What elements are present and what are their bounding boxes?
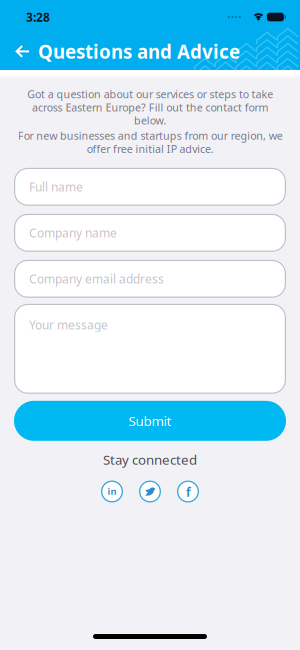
button[interactable]: Company name bbox=[14, 214, 286, 252]
button[interactable]: LinkedIn bbox=[101, 480, 123, 502]
staticText: Got a question about our services or ste… bbox=[27, 87, 273, 127]
button[interactable]: Full name bbox=[14, 168, 286, 206]
button[interactable]: Back bbox=[0, 41, 33, 61]
staticText: For new businesses and startups from our… bbox=[17, 128, 282, 156]
staticText: Questions and Advice bbox=[38, 39, 240, 64]
staticText: 3:28 bbox=[26, 9, 50, 25]
staticText: Company name bbox=[29, 225, 117, 241]
button[interactable]: Submit bbox=[14, 401, 286, 441]
staticText: f bbox=[186, 484, 191, 500]
button[interactable]: Twitter bbox=[139, 480, 161, 502]
staticText: Submit bbox=[128, 412, 171, 430]
button[interactable]: Your message bbox=[14, 304, 286, 394]
staticText: Full name bbox=[29, 179, 83, 195]
button[interactable]: Facebook bbox=[177, 480, 199, 502]
staticText: in bbox=[107, 485, 116, 497]
staticText: Your message bbox=[29, 317, 108, 333]
staticText: Stay connected bbox=[103, 451, 197, 468]
button[interactable]: Company email address bbox=[14, 260, 286, 298]
staticText: Company email address bbox=[29, 271, 164, 287]
